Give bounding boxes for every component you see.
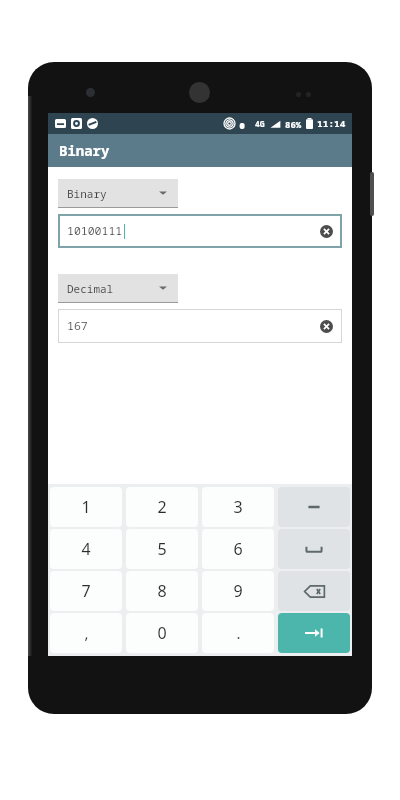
button[interactable]: 4 <box>50 529 122 569</box>
staticText: 3 <box>233 496 243 518</box>
button[interactable]: 0 <box>126 613 198 653</box>
button[interactable]: Binary <box>58 179 178 208</box>
staticText: 8 <box>157 580 167 602</box>
button[interactable]: . <box>202 613 274 653</box>
staticText: Decimal <box>67 281 114 296</box>
staticText: 1 <box>81 496 91 518</box>
button[interactable]: Space <box>278 529 350 569</box>
button[interactable]: 5 <box>126 529 198 569</box>
button[interactable]: 6 <box>202 529 274 569</box>
staticText: Binary <box>59 141 110 160</box>
button[interactable]: 1 <box>50 487 122 527</box>
staticText: Binary <box>67 186 107 201</box>
staticText: 86% <box>285 118 302 130</box>
staticText: 0 <box>157 622 167 644</box>
button[interactable]: 7 <box>50 571 122 611</box>
staticText: 2 <box>157 496 167 518</box>
button[interactable]: Minus <box>278 487 350 527</box>
button[interactable]: 167 <box>58 309 342 343</box>
staticText: 9 <box>233 580 243 602</box>
button[interactable]: Clear text <box>318 223 334 239</box>
staticText: . <box>236 623 241 643</box>
button[interactable]: Decimal <box>58 274 178 303</box>
button[interactable]: Clear text <box>318 318 334 334</box>
button[interactable]: 2 <box>126 487 198 527</box>
staticText: , <box>84 623 89 643</box>
staticText: 4G <box>255 118 265 129</box>
button[interactable]: Enter <box>278 613 350 653</box>
staticText: 5 <box>157 538 167 560</box>
button[interactable]: 8 <box>126 571 198 611</box>
staticText: 11:14 <box>317 117 346 130</box>
button[interactable]: 9 <box>202 571 274 611</box>
staticText: 10100111 <box>67 223 123 239</box>
staticText: 6 <box>233 538 243 560</box>
staticText: 7 <box>81 580 91 602</box>
button[interactable]: 3 <box>202 487 274 527</box>
staticText: 167 <box>67 318 88 334</box>
button[interactable]: , <box>50 613 122 653</box>
button[interactable]: Backspace <box>278 571 350 611</box>
staticText: 4 <box>81 538 91 560</box>
button[interactable]: 10100111 <box>58 214 342 248</box>
